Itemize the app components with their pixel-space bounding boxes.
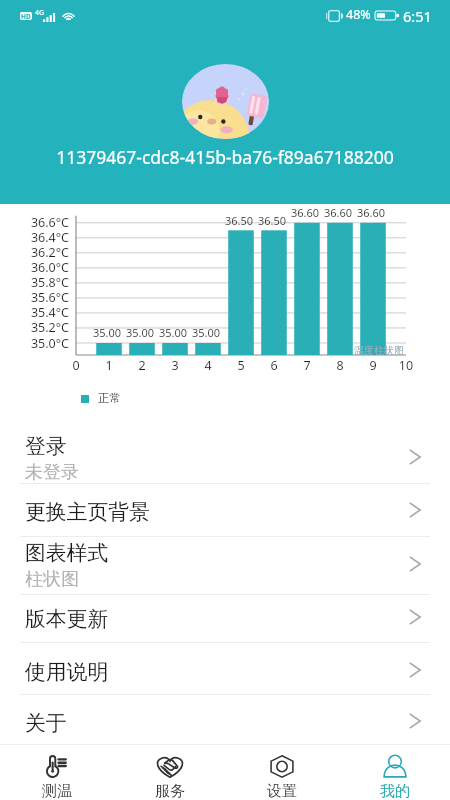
staticText: 测温 — [42, 782, 72, 800]
staticText: 设置 — [267, 782, 297, 800]
button[interactable]: 更换主页背景 — [0, 483, 450, 536]
button[interactable]: 关于 — [0, 694, 450, 744]
staticText: 11379467-cdc8-415b-ba76-f89a67188200 — [0, 145, 450, 169]
staticText: 2 — [128, 357, 156, 374]
staticText: 10 — [392, 357, 420, 374]
staticText: 48% — [346, 6, 371, 23]
staticText: 未登录 — [25, 461, 79, 484]
staticText: 36.50 — [218, 213, 260, 228]
staticText: 柱状图 — [25, 568, 79, 591]
staticText: 使用说明 — [25, 659, 109, 685]
button[interactable]: 版本更新 — [0, 594, 450, 642]
other: Services — [155, 755, 185, 778]
staticText: 35.8°C — [10, 274, 69, 291]
button[interactable]: Services — [113, 744, 226, 800]
staticText: 0 — [62, 357, 90, 374]
button[interactable]: 使用说明 — [0, 642, 450, 694]
staticText: 35.00 — [119, 325, 161, 340]
staticText: 36.2°C — [10, 244, 69, 261]
staticText: 登录 — [25, 433, 67, 459]
staticText: 正常 — [98, 391, 121, 405]
staticText: 35.4°C — [10, 304, 69, 321]
staticText: 6 — [260, 357, 288, 374]
staticText: 服务 — [155, 782, 185, 800]
staticText: 4 — [194, 357, 222, 374]
staticText: 35.0°C — [10, 335, 69, 352]
button[interactable]: Settings — [225, 744, 338, 800]
staticText: 6:51 — [403, 6, 432, 26]
staticText: 36.60 — [350, 205, 392, 220]
staticText: 35.6°C — [10, 289, 69, 306]
staticText: 3 — [161, 357, 189, 374]
staticText: 35.00 — [86, 325, 128, 340]
staticText: HD — [21, 12, 31, 20]
staticText: 图表样式 — [25, 540, 109, 566]
staticText: 36.0°C — [10, 259, 69, 276]
staticText: 9 — [359, 357, 387, 374]
staticText: 35.00 — [185, 325, 227, 340]
button[interactable]: 登录 — [0, 415, 450, 483]
other: Settings — [267, 755, 297, 778]
other: Measure temperature — [42, 755, 72, 778]
staticText: 35.2°C — [10, 319, 69, 336]
staticText: 4G — [35, 8, 45, 18]
staticText: 7 — [293, 357, 321, 374]
staticText: 1 — [95, 357, 123, 374]
staticText: 35.00 — [152, 325, 194, 340]
staticText: 36.60 — [284, 205, 326, 220]
staticText: 温度柱状图 — [354, 344, 404, 357]
staticText: 36.6°C — [10, 214, 69, 231]
staticText: 36.60 — [317, 205, 359, 220]
button[interactable]: Profile — [338, 744, 450, 800]
other: Profile — [380, 755, 410, 778]
staticText: 36.50 — [251, 213, 293, 228]
button[interactable]: Measure temperature — [0, 744, 113, 800]
staticText: 我的 — [380, 782, 410, 800]
staticText: 8 — [326, 357, 354, 374]
button[interactable]: 图表样式 — [0, 536, 450, 594]
staticText: 版本更新 — [25, 606, 109, 632]
staticText: 关于 — [25, 710, 67, 736]
staticText: 36.4°C — [10, 229, 69, 246]
staticText: 5 — [227, 357, 255, 374]
staticText: 更换主页背景 — [25, 499, 150, 525]
